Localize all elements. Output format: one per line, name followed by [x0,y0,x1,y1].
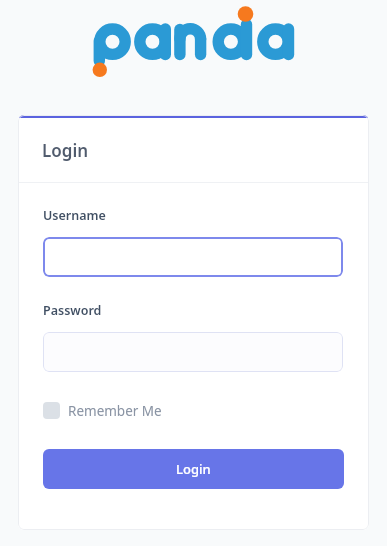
staticText: Remember Me [68,402,162,419]
staticText: Username [43,207,106,224]
staticText: Login [176,460,211,478]
button[interactable]: Remember Me [43,402,162,419]
button[interactable]: Login [43,449,344,489]
staticText: Password [43,302,102,319]
staticText: Login [42,139,89,162]
button[interactable] [43,332,343,372]
button[interactable] [43,237,343,277]
